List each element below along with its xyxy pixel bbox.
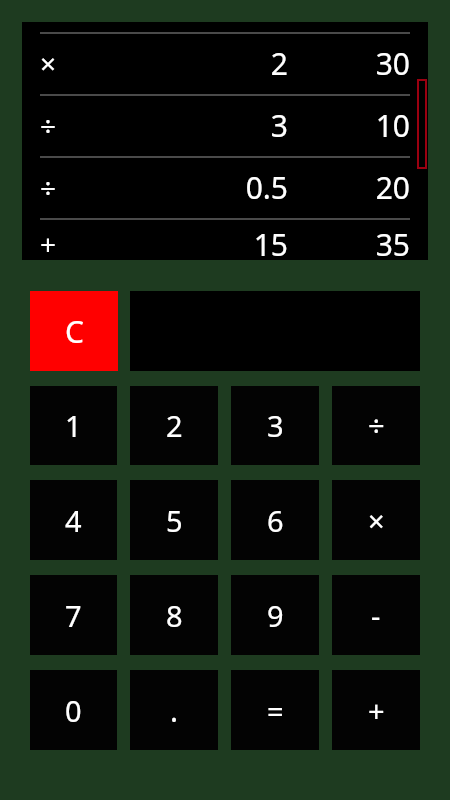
staticText: 1 [65, 406, 82, 445]
button[interactable]: × [332, 480, 420, 560]
staticText: 5 [166, 501, 183, 540]
staticText: C [65, 311, 84, 352]
button[interactable]: . [130, 670, 218, 750]
button[interactable]: - [332, 575, 420, 655]
button[interactable]: 0 [30, 670, 117, 750]
staticText: 3 [267, 406, 284, 445]
staticText: 35 [300, 224, 410, 260]
staticText: + [368, 691, 385, 730]
button[interactable]: 1 [30, 386, 117, 465]
button[interactable]: 9 [231, 575, 319, 655]
staticText: 30 [300, 43, 410, 84]
staticText: 4 [65, 501, 82, 540]
button[interactable]: 4 [30, 480, 117, 560]
staticText: 20 [300, 167, 410, 208]
staticText: 9 [267, 596, 284, 635]
button[interactable]: 6 [231, 480, 319, 560]
staticText: = [267, 691, 284, 730]
button[interactable]: 8 [130, 575, 218, 655]
staticText: 3 [84, 105, 288, 146]
button[interactable]: + [332, 670, 420, 750]
button[interactable]: 5 [130, 480, 218, 560]
staticText: × [368, 501, 385, 540]
staticText: ÷ [40, 168, 84, 206]
staticText: 0 [65, 691, 82, 730]
staticText: × [40, 44, 84, 82]
staticText: 0.5 [84, 167, 288, 208]
button[interactable]: 7 [30, 575, 117, 655]
staticText: + [40, 225, 84, 260]
staticText: 2 [84, 43, 288, 84]
button[interactable]: C [30, 291, 118, 371]
staticText: . [170, 690, 179, 731]
button[interactable]: 2 [130, 386, 218, 465]
staticText: 15 [84, 224, 288, 260]
staticText: - [371, 596, 381, 635]
staticText: 6 [267, 501, 284, 540]
button[interactable]: = [231, 670, 319, 750]
staticText: 7 [65, 596, 82, 635]
staticText: ÷ [368, 406, 385, 445]
staticText: 8 [166, 596, 183, 635]
staticText: 10 [300, 105, 410, 146]
staticText: 2 [166, 406, 183, 445]
button[interactable]: ÷ [332, 386, 420, 465]
button[interactable]: 3 [231, 386, 319, 465]
staticText: ÷ [40, 106, 84, 144]
